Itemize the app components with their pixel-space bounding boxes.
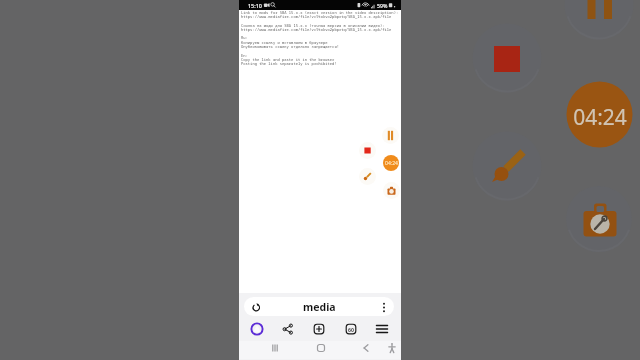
staticText: 59% (377, 2, 388, 9)
staticText: Copy the link and paste it in the browse… (241, 57, 335, 62)
button[interactable]: Menu (374, 321, 390, 337)
staticText: En: (241, 53, 248, 58)
button[interactable]: Accessibility (384, 341, 400, 355)
button[interactable]: Share (280, 321, 296, 337)
button[interactable]: Alice assistant (249, 321, 265, 337)
staticText: Link to mods for SBA 15.x.x (exact versi… (241, 10, 399, 15)
staticText: Опубликовывать ссылку отдельно запрещает… (241, 44, 339, 49)
button[interactable]: Draw (359, 168, 376, 185)
button[interactable]: Tabs: 60 open (343, 321, 359, 337)
staticText: https://www.mediafire.com/file/vc9tokvo2… (241, 14, 392, 19)
staticText: 04:24 (573, 103, 627, 132)
button[interactable]: Tools (383, 182, 400, 199)
staticText: Ru: (241, 35, 248, 40)
staticText: 60 (348, 326, 354, 333)
staticText: 04:24 (385, 160, 398, 167)
staticText: Ссылка на моды для SBA 15.x.x (точная ве… (241, 23, 385, 28)
staticText: Копируем ссылку и вставляем в браузере (241, 40, 328, 45)
button[interactable]: Home (313, 341, 329, 355)
button[interactable]: media (244, 297, 394, 316)
button[interactable]: Recording timer 04:24 (383, 155, 399, 171)
staticText: media (303, 300, 336, 314)
button[interactable]: New tab (311, 321, 327, 337)
staticText: 15:10 (248, 2, 262, 9)
button[interactable]: Pause recording (382, 127, 399, 144)
staticText: Posting the link separately is prohibite… (241, 61, 337, 66)
staticText: https://www.mediafire.com/file/vc9tokvo2… (241, 27, 392, 32)
button[interactable]: Recents (267, 341, 283, 355)
button[interactable]: Stop recording (359, 142, 376, 159)
button[interactable]: Back (358, 341, 374, 355)
